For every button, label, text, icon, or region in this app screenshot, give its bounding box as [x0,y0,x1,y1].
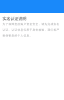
staticText: 为了保障您的账户资金安全，请先完成实名认证。认证信息仅用于身份核验，我们将严格保… [3,22,60,37]
staticText: 实名认证说明 [3,16,27,21]
